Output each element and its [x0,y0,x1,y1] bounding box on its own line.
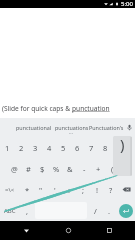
button[interactable]: Backspace [118,179,135,200]
staticText: punctuations [55,124,89,131]
button[interactable]: @ [7,158,21,179]
button[interactable]: / [88,200,102,221]
button[interactable]: 7 [84,137,98,158]
staticText: ABC [4,207,16,215]
button[interactable]: 9 [112,137,126,158]
staticText: % [53,164,60,174]
button[interactable]: # [21,158,35,179]
button[interactable]: . [102,200,116,221]
staticText: @ [11,164,18,174]
button[interactable]: * [20,179,34,200]
button[interactable]: ) [119,158,133,179]
staticText: 3 [33,143,38,153]
staticText: 6 [75,143,80,153]
staticText: =\< [5,186,15,194]
button[interactable]: Back [0,221,53,240]
button[interactable]: 5 [56,137,70,158]
staticText: , [26,206,29,216]
button[interactable]: + [91,158,105,179]
button[interactable]: 2 [14,137,28,158]
staticText: ? [109,185,113,195]
staticText: 8 [103,143,108,153]
staticText: ' [54,185,56,195]
staticText: punctuation [72,104,110,113]
button[interactable]: 8 [98,137,112,158]
staticText: 9 [117,143,122,153]
staticText: Punctuation's [89,124,124,131]
button[interactable]: punctuations [54,118,89,137]
button[interactable]: Recents [84,221,135,240]
staticText: 5 [61,143,66,153]
other: Backspace [122,185,131,194]
staticText: # [26,164,31,174]
button[interactable]: Punctuation's [89,118,124,137]
staticText: $ [40,164,45,174]
staticText: . [108,206,111,216]
staticText: punctuational [16,124,52,131]
button[interactable]: 3 [28,137,42,158]
button[interactable]: , [20,200,34,221]
staticText: : [68,185,71,195]
staticText: ··· [69,130,74,137]
button[interactable]: ' [48,179,62,200]
button[interactable]: 1 [0,137,14,158]
button[interactable]: ? [104,179,118,200]
button[interactable]: =\< [0,179,20,200]
staticText: * [25,185,30,195]
button[interactable]: % [49,158,63,179]
button[interactable]: Enter [119,204,133,218]
button[interactable]: & [63,158,77,179]
staticText: 0 [128,143,133,153]
staticText: ! [96,185,99,195]
button[interactable]: 4 [42,137,56,158]
button[interactable]: punctuational [14,118,54,137]
button[interactable]: - [77,158,91,179]
staticText: 1 [5,143,10,153]
staticText: 2 [19,143,24,153]
button[interactable]: Voice input [124,118,135,137]
staticText: 5:00 [121,0,133,8]
button[interactable]: ; [76,179,90,200]
staticText: " [39,185,43,195]
button[interactable]: " [34,179,48,200]
button[interactable]: 6 [70,137,84,158]
staticText: ) [120,136,125,154]
button[interactable]: $ [35,158,49,179]
staticText: 7 [89,143,94,153]
staticText: (Slide for quick caps & [2,104,72,113]
staticText: - [83,164,86,174]
staticText: ; [82,185,85,195]
staticText: + [96,164,101,174]
button[interactable]: 0 [126,137,135,158]
button[interactable]: Home [53,221,84,240]
staticText: ( [111,164,114,174]
staticText: / [94,206,97,216]
staticText: & [67,164,73,174]
button[interactable] [34,200,88,221]
button[interactable]: ! [90,179,104,200]
button[interactable]: : [62,179,76,200]
button[interactable]: ( [105,158,119,179]
button[interactable]: ABC [0,200,20,221]
staticText: 4 [47,143,52,153]
